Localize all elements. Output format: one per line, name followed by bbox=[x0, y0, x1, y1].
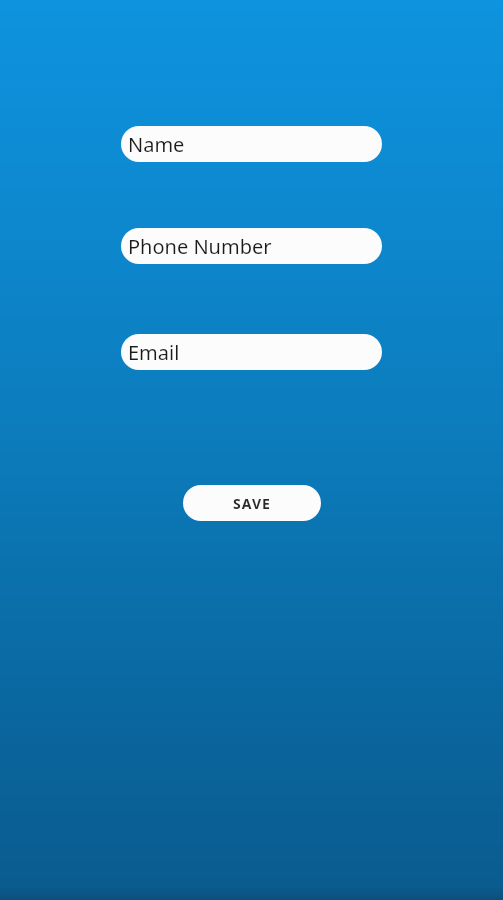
button[interactable]: Email bbox=[121, 334, 382, 370]
button[interactable]: Phone Number bbox=[121, 228, 382, 264]
staticText: Phone Number bbox=[128, 233, 272, 260]
staticText: Name bbox=[128, 131, 185, 158]
button[interactable]: SAVE bbox=[183, 485, 321, 521]
staticText: SAVE bbox=[233, 494, 271, 513]
staticText: Email bbox=[128, 339, 180, 366]
button[interactable]: Name bbox=[121, 126, 382, 162]
